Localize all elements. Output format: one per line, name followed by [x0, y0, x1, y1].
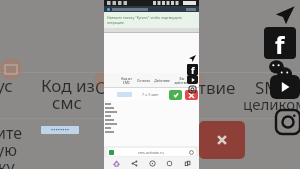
- staticText: Остаток: [137, 78, 150, 82]
- staticText: О: [95, 76, 108, 99]
- staticText: 7 ч. 5 мин: [142, 92, 159, 97]
- staticText: ••••••••: [51, 126, 70, 134]
- button[interactable]: Refresh: [146, 157, 158, 169]
- staticText: SMS: [255, 76, 290, 99]
- button[interactable]: sms-activate.ru: [107, 148, 196, 156]
- staticText: Вы действия: [174, 76, 190, 84]
- button[interactable]: YouTube: [270, 75, 300, 99]
- button[interactable]: Facebook: [264, 27, 296, 59]
- button[interactable]: WeChat: [266, 56, 296, 86]
- button[interactable]: Telegram: [271, 1, 299, 29]
- button[interactable]: Telegram: [187, 53, 198, 64]
- staticText: Код из СМС: [121, 76, 132, 84]
- staticText: смс: [52, 91, 82, 114]
- button[interactable]: Home: [110, 157, 122, 169]
- button[interactable]: Instagram: [273, 107, 300, 137]
- button[interactable]: YouTube: [187, 75, 198, 84]
- staticText: f: [275, 28, 285, 59]
- button[interactable]: Close: [199, 121, 245, 159]
- staticText: целиком: [243, 94, 300, 114]
- staticText: Действие: [154, 78, 170, 82]
- button[interactable]: Cancel: [185, 90, 198, 100]
- staticText: Нажмите кнопку "Купить" чтобы подтвердит…: [107, 15, 196, 25]
- staticText: твие: [198, 76, 236, 99]
- staticText: ите: [0, 122, 23, 144]
- button[interactable]: Instagram: [187, 84, 198, 95]
- staticText: f: [191, 64, 195, 75]
- staticText: ую: [0, 139, 17, 161]
- button[interactable]: Tabs: [181, 157, 193, 169]
- button[interactable]: Confirm: [169, 90, 182, 100]
- staticText: ус: [0, 74, 13, 97]
- button[interactable]: Share: [128, 157, 140, 169]
- staticText: ку: [0, 156, 15, 169]
- staticText: sms-activate.ru: [138, 150, 164, 155]
- button[interactable]: Bookmarks: [163, 157, 175, 169]
- staticText: Код из: [41, 74, 95, 97]
- button[interactable]: Facebook: [187, 64, 198, 75]
